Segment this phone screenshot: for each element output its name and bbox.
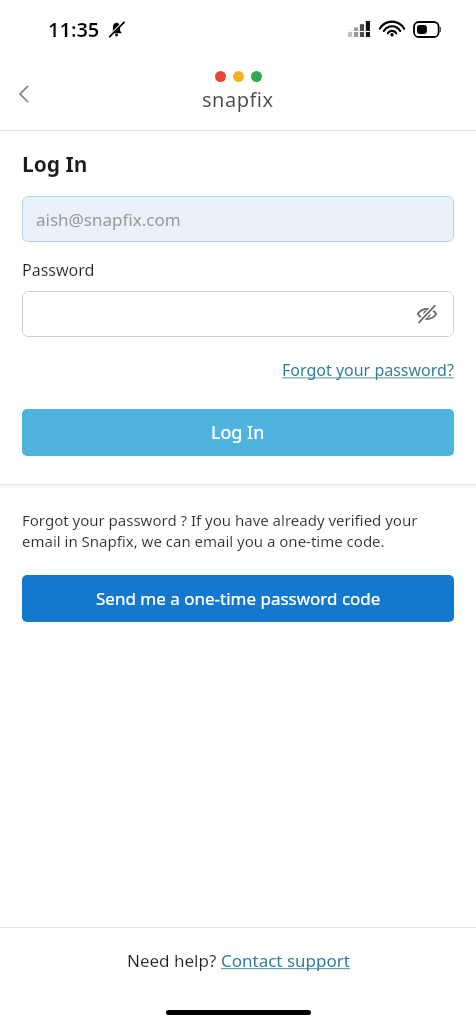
button[interactable]: Forgot your password? bbox=[282, 357, 454, 383]
staticText: Forgot your password ? If you have alrea… bbox=[22, 510, 454, 552]
staticText: Send me a one-time password code bbox=[96, 587, 381, 610]
button[interactable]: Send me a one-time password code bbox=[22, 575, 454, 622]
staticText: snapfix bbox=[202, 86, 274, 113]
staticText: Log In bbox=[211, 420, 265, 445]
staticText: 11:35 bbox=[48, 16, 100, 43]
staticText: Contact support bbox=[221, 949, 350, 972]
staticText: Password bbox=[22, 259, 95, 281]
button[interactable]: Log In bbox=[22, 409, 454, 456]
staticText: Forgot your password? bbox=[282, 359, 454, 381]
button[interactable]: Contact support bbox=[221, 949, 350, 972]
staticText: Log In bbox=[22, 150, 88, 179]
button[interactable]: Show password bbox=[22, 291, 454, 337]
button[interactable]: Show password bbox=[408, 295, 446, 333]
staticText: aish@snapfix.com bbox=[36, 208, 181, 231]
staticText: Need help? bbox=[127, 949, 221, 972]
button[interactable]: Back bbox=[0, 70, 48, 118]
button[interactable]: aish@snapfix.com bbox=[22, 196, 454, 242]
